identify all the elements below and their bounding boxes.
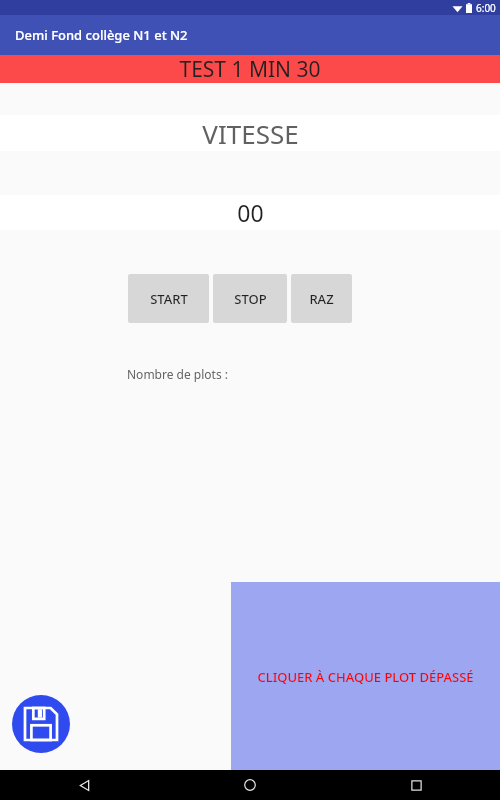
staticText: TEST 1 MIN 30 bbox=[179, 55, 321, 83]
button[interactable]: START bbox=[128, 274, 209, 323]
button[interactable]: STOP bbox=[213, 274, 287, 323]
staticText: RAZ bbox=[309, 290, 334, 308]
staticText: VITESSE bbox=[202, 116, 299, 151]
staticText: STOP bbox=[234, 290, 267, 308]
button[interactable]: Recent apps bbox=[333, 770, 499, 800]
button[interactable]: Home bbox=[167, 770, 333, 800]
staticText: CLIQUER À CHAQUE PLOT DÉPASSÉ bbox=[257, 668, 474, 686]
button[interactable]: CLIQUER À CHAQUE PLOT DÉPASSÉ bbox=[231, 582, 500, 770]
staticText: Nombre de plots : bbox=[127, 366, 229, 382]
staticText: START bbox=[150, 290, 188, 308]
staticText: 6:00 bbox=[476, 1, 496, 15]
button[interactable]: RAZ bbox=[291, 274, 352, 323]
staticText: 00 bbox=[237, 197, 264, 228]
button[interactable]: Back bbox=[1, 770, 167, 800]
button[interactable]: Enregistrer bbox=[12, 695, 70, 753]
staticText: Demi Fond collège N1 et N2 bbox=[15, 26, 188, 44]
